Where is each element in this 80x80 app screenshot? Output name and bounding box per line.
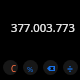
button[interactable]: Percent xyxy=(23,60,38,75)
button[interactable]: Backspace xyxy=(43,60,58,75)
staticText: C xyxy=(11,63,17,74)
staticText: % xyxy=(27,64,34,74)
button[interactable]: Clear xyxy=(3,60,18,75)
button[interactable]: Divide xyxy=(63,60,78,75)
staticText: 377.003.773 xyxy=(11,20,75,35)
